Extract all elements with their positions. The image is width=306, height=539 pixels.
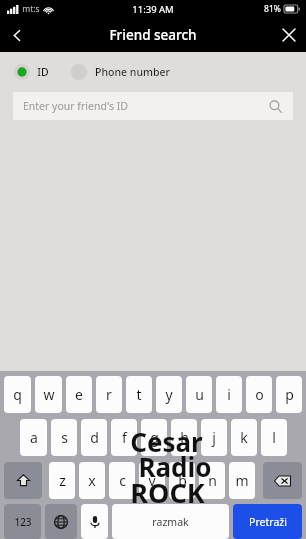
button[interactable]: d [81,419,107,456]
staticText: b [178,471,187,490]
button[interactable]: t [126,376,152,413]
staticText: v [148,471,156,490]
staticText: m [235,471,249,490]
staticText: x [88,471,96,490]
button[interactable]: o [246,376,272,413]
button[interactable]: u [186,376,212,413]
button[interactable]: f [111,419,137,456]
button[interactable]: Backspace [263,462,302,499]
button[interactable]: Enter your friend's ID [13,92,293,120]
button[interactable]: j [201,419,227,456]
staticText: y [165,385,173,404]
button[interactable]: Dictation [81,504,108,539]
staticText: w [43,385,55,404]
staticText: 123 [14,515,32,529]
button[interactable]: n [199,462,225,499]
staticText: j [212,428,216,447]
button[interactable]: Numbers [4,504,41,539]
staticText: z [59,471,66,490]
button[interactable]: x [79,462,105,499]
staticText: Friend search [109,26,197,44]
button[interactable]: r [96,376,122,413]
button[interactable]: a [20,419,47,456]
button[interactable]: l [261,419,287,456]
button[interactable]: e [66,376,92,413]
button[interactable]: v [139,462,165,499]
staticText: Radio [138,449,212,484]
button[interactable]: Back [0,18,34,52]
staticText: Phone number [95,65,170,79]
staticText: l [272,428,276,447]
button[interactable]: Pretraži [233,504,302,539]
button[interactable]: razmak [112,504,229,539]
staticText: ROCK [130,474,205,511]
staticText: d [90,428,99,447]
staticText: Cesar [130,424,203,459]
staticText: Pretraži [249,515,287,529]
button[interactable]: i [216,376,242,413]
other: Search [267,98,283,114]
staticText: 81% [264,3,281,15]
staticText: c [119,471,126,490]
staticText: q [13,385,22,404]
button[interactable]: c [109,462,135,499]
button[interactable]: s [51,419,77,456]
staticText: 11:39 AM [132,3,174,16]
staticText: h [180,428,189,447]
staticText: razmak [152,515,189,529]
button[interactable]: g [141,419,167,456]
staticText: o [255,385,264,404]
button[interactable]: ID [14,64,49,80]
button[interactable]: m [229,462,255,499]
button[interactable]: h [171,419,197,456]
staticText: a [30,428,38,447]
staticText: ID [37,65,49,79]
staticText: r [106,385,112,404]
button[interactable]: z [49,462,75,499]
button[interactable]: k [231,419,257,456]
button[interactable]: Phone number [71,64,170,80]
staticText: s [61,428,68,447]
staticText: i [227,385,231,404]
staticText: p [285,385,294,404]
staticText: Enter your friend's ID [23,99,128,113]
button[interactable]: y [156,376,182,413]
button[interactable]: p [276,376,302,413]
button[interactable]: Language [45,504,77,539]
button[interactable]: Shift [4,462,42,499]
button[interactable]: Close [272,18,306,52]
staticText: f [122,428,127,447]
staticText: g [150,428,159,447]
button[interactable]: q [4,376,31,413]
staticText: t [136,385,142,404]
staticText: n [208,471,217,490]
staticText: k [240,428,248,447]
staticText: e [75,385,83,404]
staticText: u [195,385,204,404]
button[interactable]: w [35,376,62,413]
button[interactable]: b [169,462,195,499]
staticText: mt:s [22,3,40,15]
